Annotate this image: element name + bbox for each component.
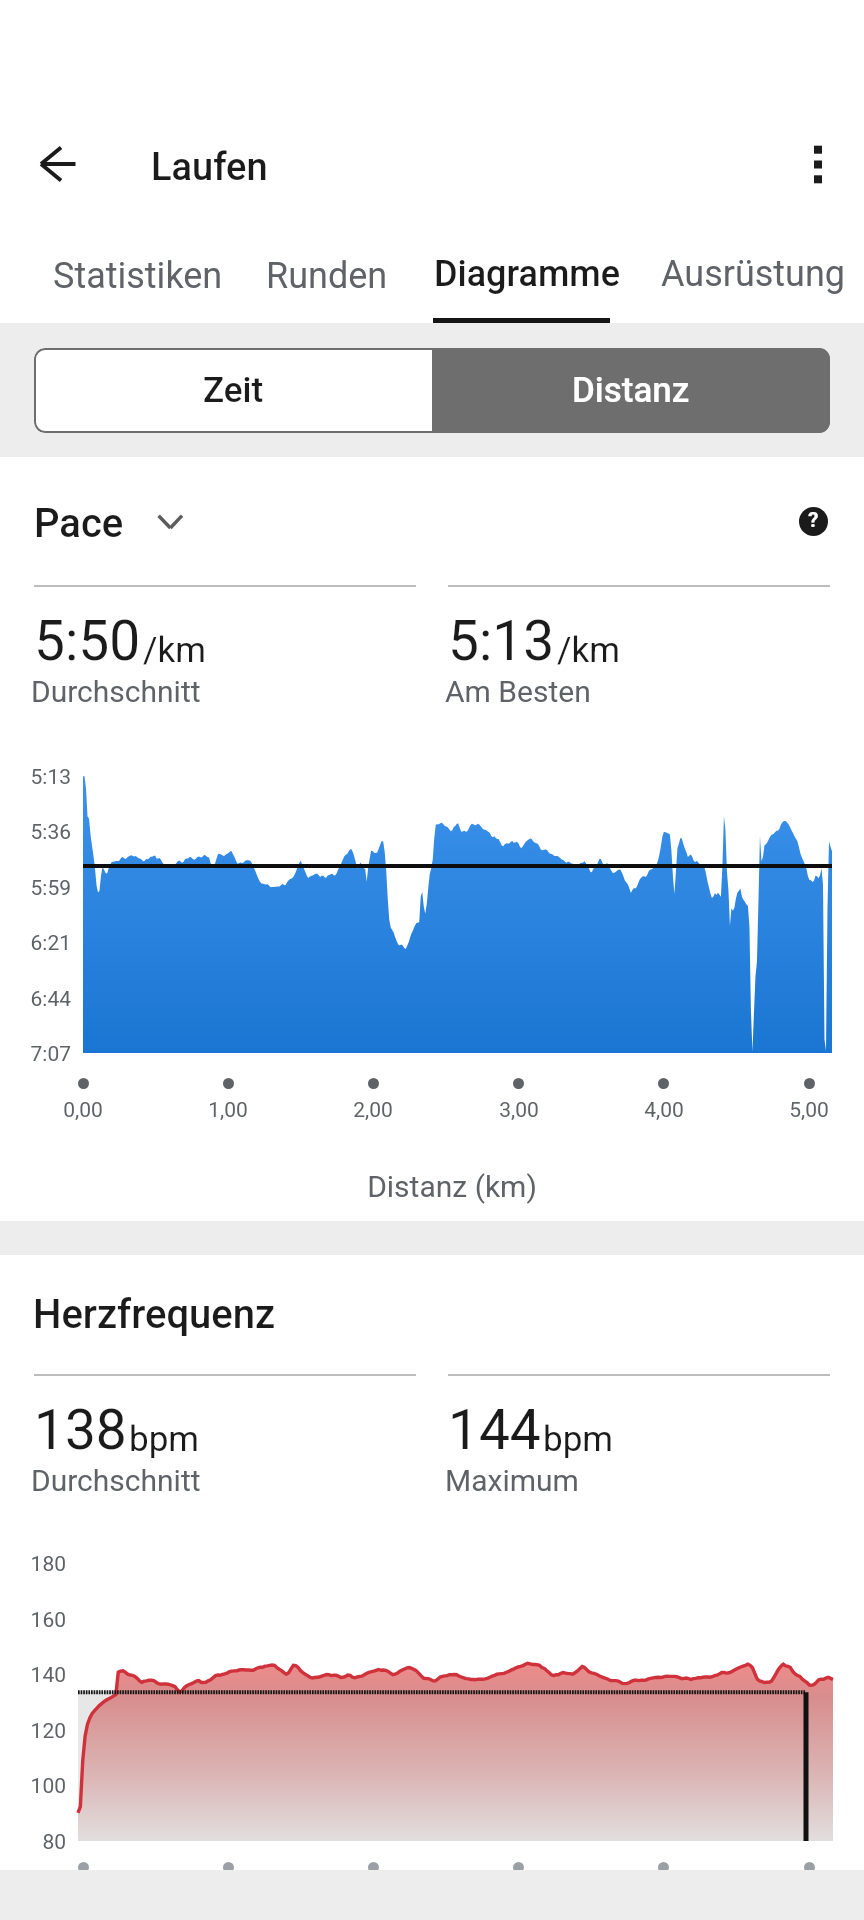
staticText: Zeit	[203, 370, 264, 411]
staticText: 5:50	[34, 609, 141, 673]
staticText: Am Besten	[445, 674, 591, 709]
staticText: 5:36	[0, 820, 71, 845]
button[interactable]: Zeit	[34, 348, 432, 433]
staticText: 4,00	[624, 1098, 704, 1123]
staticText: Diagramme	[434, 253, 620, 295]
staticText: Statistiken	[53, 255, 223, 297]
staticText: 5:13	[0, 765, 71, 790]
staticText: 80	[0, 1830, 66, 1855]
staticText: Laufen	[151, 145, 268, 190]
staticText: 5:13	[448, 609, 555, 673]
staticText: 140	[0, 1663, 66, 1688]
button[interactable]: Runden	[266, 240, 388, 314]
button[interactable]: Pace	[24, 490, 204, 548]
staticText: 1,00	[188, 1098, 268, 1123]
staticText: Durchschnitt	[31, 674, 201, 709]
staticText: /km	[557, 630, 620, 671]
button[interactable]: More options	[786, 134, 846, 194]
staticText: Runden	[266, 255, 388, 297]
staticText: Maximum	[445, 1463, 579, 1498]
staticText: 0,00	[43, 1098, 123, 1123]
staticText: Distanz	[572, 370, 690, 411]
staticText: 5:59	[0, 876, 71, 901]
button[interactable]: Back	[26, 134, 86, 194]
staticText: Distanz (km)	[252, 1169, 652, 1204]
button[interactable]: Help	[790, 498, 836, 544]
staticText: 100	[0, 1774, 66, 1799]
staticText: Durchschnitt	[31, 1463, 201, 1498]
button[interactable]: Ausrüstung	[661, 238, 846, 312]
button[interactable]: Statistiken	[53, 240, 223, 314]
staticText: 3,00	[479, 1098, 559, 1123]
staticText: 180	[0, 1552, 66, 1577]
staticText: bpm	[129, 1419, 199, 1460]
staticText: Herzfrequenz	[33, 1291, 276, 1338]
staticText: 6:21	[0, 931, 71, 956]
staticText: 144	[448, 1398, 541, 1462]
staticText: 7:07	[0, 1042, 71, 1067]
staticText: Pace	[34, 500, 124, 547]
staticText: 5,00	[769, 1098, 849, 1123]
staticText: 138	[34, 1398, 127, 1462]
staticText: 2,00	[333, 1098, 413, 1123]
staticText: Ausrüstung	[661, 253, 846, 295]
button[interactable]: Diagramme	[434, 238, 620, 312]
staticText: 6:44	[0, 987, 71, 1012]
staticText: bpm	[543, 1419, 613, 1460]
staticText: 160	[0, 1608, 66, 1633]
staticText: /km	[143, 630, 206, 671]
staticText: 120	[0, 1719, 66, 1744]
staticText: ?	[808, 508, 819, 533]
button[interactable]: Distanz	[432, 348, 830, 433]
